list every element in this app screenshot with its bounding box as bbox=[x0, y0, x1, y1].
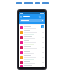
button[interactable] bbox=[19, 25, 45, 30]
button[interactable] bbox=[19, 60, 45, 65]
button[interactable]: Menu bbox=[20, 16, 22, 18]
button[interactable] bbox=[19, 35, 45, 40]
button[interactable] bbox=[19, 30, 45, 35]
button[interactable]: More options bbox=[42, 16, 44, 18]
button[interactable] bbox=[19, 65, 45, 67]
button[interactable] bbox=[20, 19, 44, 22]
button[interactable] bbox=[19, 50, 45, 55]
button[interactable] bbox=[19, 55, 45, 60]
button[interactable] bbox=[19, 40, 45, 45]
button[interactable]: Compose bbox=[41, 25, 44, 28]
button[interactable] bbox=[19, 45, 45, 50]
